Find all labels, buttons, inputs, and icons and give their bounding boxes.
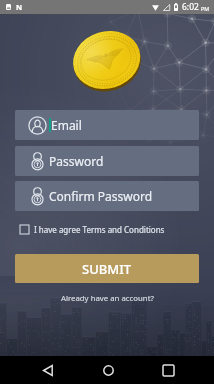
button[interactable]: Recent apps (148, 356, 188, 384)
staticText: N (16, 2, 23, 12)
button[interactable]: Password (15, 146, 199, 176)
staticText: Password (49, 153, 104, 169)
button[interactable]: Back (28, 356, 68, 384)
staticText: 6:02 (182, 1, 199, 13)
button[interactable]: Email (15, 110, 199, 140)
staticText: SUBMIT (82, 260, 132, 278)
staticText: Confirm Password (49, 188, 153, 204)
staticText: Email (51, 117, 82, 133)
staticText: I have agree Terms and Conditions (34, 224, 165, 235)
staticText: PM (201, 5, 210, 12)
button[interactable]: SUBMIT (15, 254, 199, 283)
button[interactable]: Home (88, 356, 128, 384)
button[interactable]: I have agree Terms and Conditions (15, 222, 199, 236)
button[interactable]: Confirm Password (15, 181, 199, 211)
button[interactable]: Already have an account? (61, 293, 154, 304)
